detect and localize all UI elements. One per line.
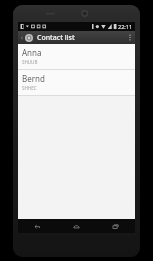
button[interactable]: Back (18, 219, 57, 233)
staticText: SHUUB (22, 59, 38, 65)
button[interactable]: Recent apps (96, 219, 135, 233)
button[interactable]: More options (125, 31, 135, 44)
staticText: Bernd (22, 73, 45, 84)
button[interactable]: Home (57, 219, 96, 233)
staticText: 22:11 (118, 23, 133, 30)
button[interactable]: Navigate up (18, 31, 35, 44)
staticText: Anna (22, 47, 42, 58)
staticText: SHHEC (22, 85, 37, 91)
button[interactable]: Anna (18, 44, 135, 69)
staticText: Contact list (37, 33, 125, 43)
button[interactable]: Bernd (18, 70, 135, 95)
